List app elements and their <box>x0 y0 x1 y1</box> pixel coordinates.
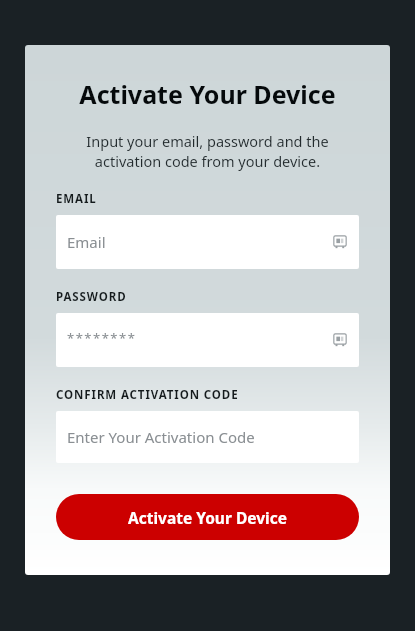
staticText: Input your email, password and the activ… <box>86 131 329 172</box>
staticText: Enter Your Activation Code <box>67 427 255 447</box>
staticText: Activate Your Device <box>79 77 336 111</box>
staticText: ******** <box>67 329 137 347</box>
button[interactable]: Activate Your Device <box>56 494 359 540</box>
button[interactable]: Autofill <box>330 232 350 252</box>
staticText: CONFIRM ACTIVATION CODE <box>56 387 239 403</box>
staticText: EMAIL <box>56 191 97 207</box>
staticText: Activate Your Device <box>128 507 287 528</box>
button[interactable]: Autofill <box>330 330 350 350</box>
button[interactable]: Email <box>56 215 359 269</box>
button[interactable]: ******** <box>56 313 359 367</box>
staticText: PASSWORD <box>56 289 127 305</box>
staticText: Email <box>67 232 106 252</box>
button[interactable]: Enter Your Activation Code <box>56 411 359 463</box>
